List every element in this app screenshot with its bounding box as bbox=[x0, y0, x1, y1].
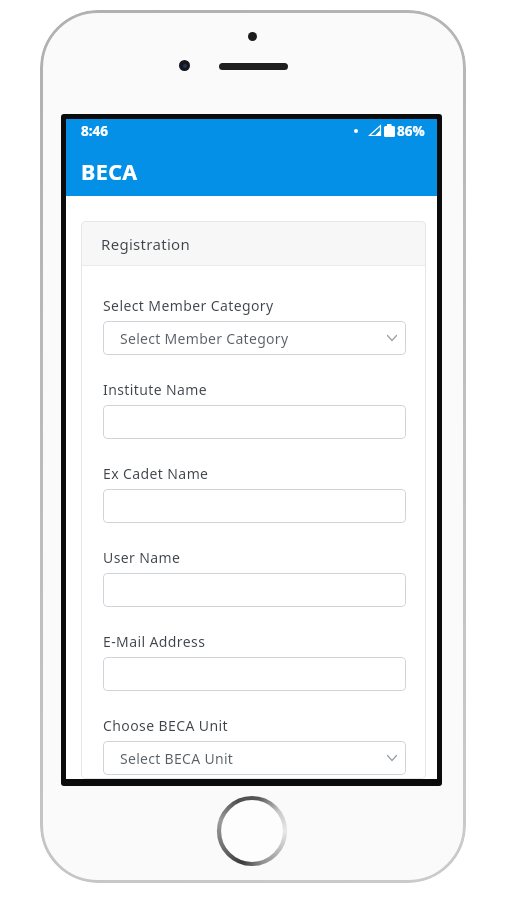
staticText: User Name bbox=[103, 548, 181, 567]
staticText: Select BECA Unit bbox=[120, 749, 234, 768]
staticText: BECA bbox=[81, 157, 138, 186]
staticText: 86% bbox=[397, 122, 425, 140]
button[interactable]: Select Member Category bbox=[103, 321, 406, 355]
button[interactable] bbox=[103, 657, 406, 691]
button[interactable]: Select BECA Unit bbox=[103, 741, 406, 775]
staticText: Select Member Category bbox=[103, 296, 274, 315]
staticText: E-Mail Address bbox=[103, 632, 206, 651]
staticText: Select Member Category bbox=[120, 329, 289, 348]
button[interactable] bbox=[103, 573, 406, 607]
staticText: Institute Name bbox=[103, 380, 208, 399]
button[interactable] bbox=[103, 489, 406, 523]
staticText: Ex Cadet Name bbox=[103, 464, 209, 483]
staticText: 8:46 bbox=[81, 122, 108, 140]
staticText: Registration bbox=[101, 234, 191, 254]
staticText: Choose BECA Unit bbox=[103, 716, 228, 735]
button[interactable] bbox=[103, 405, 406, 439]
